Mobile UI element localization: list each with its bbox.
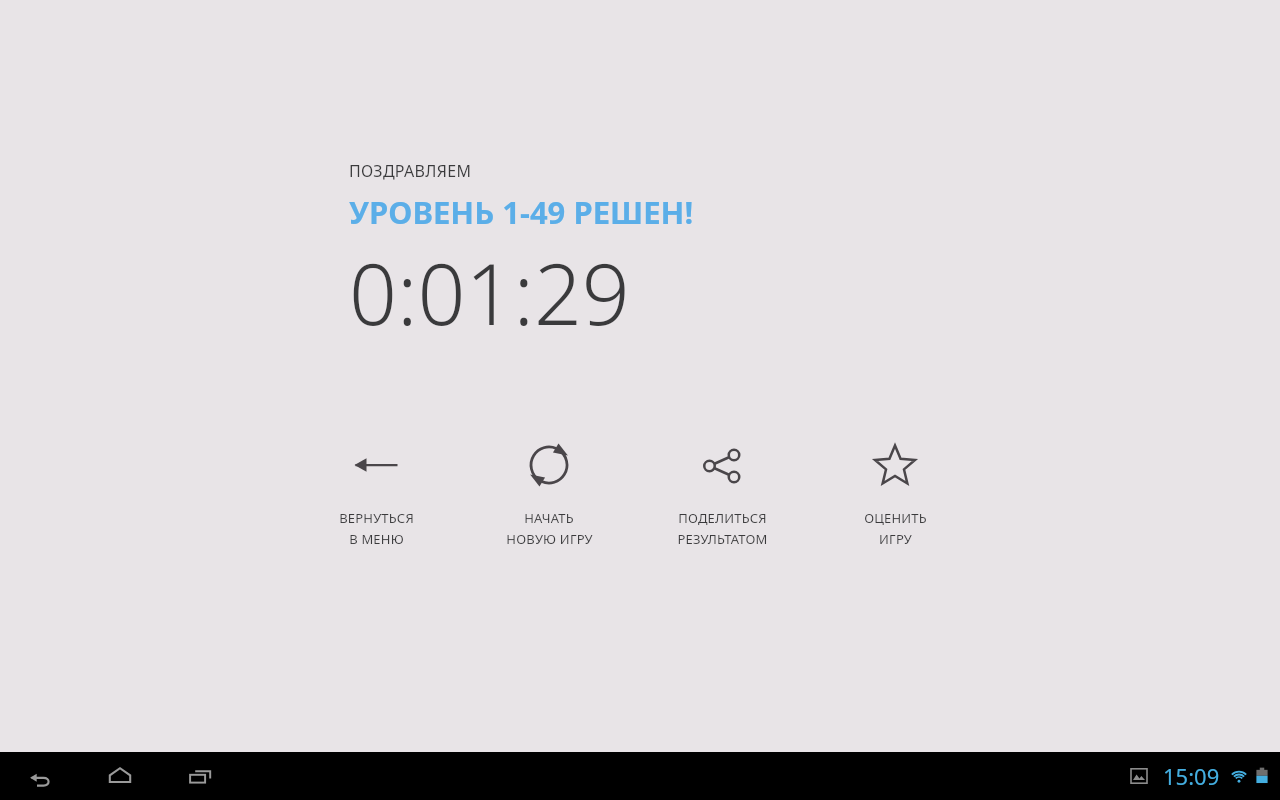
staticText: В МЕНЮ: [349, 530, 404, 548]
button[interactable]: Поделиться результатом: [647, 432, 797, 548]
button[interactable]: Оценить игру: [820, 432, 970, 548]
button[interactable]: Начать новую игру: [474, 432, 624, 548]
button[interactable]: Вернуться в меню: [301, 432, 451, 548]
staticText: ИГРУ: [879, 530, 912, 548]
staticText: НОВУЮ ИГРУ: [506, 530, 593, 548]
staticText: ОЦЕНИТЬ: [864, 509, 927, 527]
button[interactable]: Back: [12, 752, 68, 800]
staticText: УРОВЕНЬ 1-49 РЕШЕН!: [349, 191, 694, 233]
staticText: РЕЗУЛЬТАТОМ: [677, 530, 768, 548]
button[interactable]: Recent apps: [172, 752, 228, 800]
button[interactable]: Home: [92, 752, 148, 800]
staticText: НАЧАТЬ: [524, 509, 574, 527]
staticText: ПОДЕЛИТЬСЯ: [678, 509, 767, 527]
staticText: ВЕРНУТЬСЯ: [339, 509, 414, 527]
staticText: 0:01:29: [349, 235, 630, 349]
staticText: ПОЗДРАВЛЯЕМ: [349, 160, 472, 182]
staticText: 15:09: [1163, 761, 1220, 791]
